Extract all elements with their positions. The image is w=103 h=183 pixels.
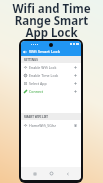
button[interactable]: Back xyxy=(23,50,27,54)
staticText: Enable Time Lock xyxy=(29,73,59,78)
button[interactable]: Recents xyxy=(31,170,38,177)
staticText: Wifi and Time Range Smart App Lock xyxy=(0,1,103,41)
button[interactable]: Enable Wifi Lock xyxy=(21,63,81,71)
staticText: Enable Wifi Lock xyxy=(29,65,57,70)
staticText: Select App xyxy=(29,81,47,86)
button[interactable]: HomeWifi_5Ghz xyxy=(21,120,81,130)
button[interactable]: Delete xyxy=(74,124,77,127)
button[interactable]: Connect xyxy=(21,87,81,95)
staticText: Connect xyxy=(29,89,43,94)
staticText: Wifi Smart Lock xyxy=(29,49,61,55)
button[interactable]: Home xyxy=(48,170,55,177)
button[interactable]: Select App xyxy=(21,79,81,87)
staticText: SETTINGS xyxy=(24,58,38,62)
staticText: SMART WIFI LIST xyxy=(24,115,49,119)
button[interactable]: Enable Time Lock xyxy=(21,71,81,79)
button[interactable]: Back xyxy=(64,170,71,177)
staticText: HomeWifi_5Ghz xyxy=(29,123,56,128)
